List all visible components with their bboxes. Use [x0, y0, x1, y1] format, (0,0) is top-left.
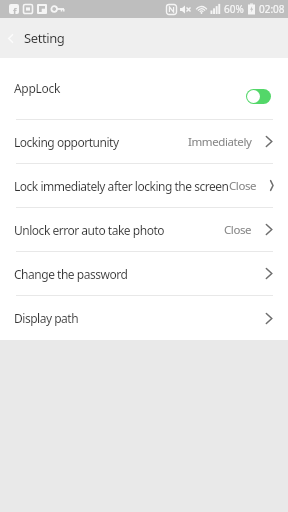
staticText: Display path: [14, 310, 79, 326]
staticText: Close: [224, 222, 252, 238]
staticText: Unlock error auto take photo: [14, 222, 165, 238]
staticText: 02:08: [259, 2, 285, 16]
staticText: Locking opportunity: [14, 134, 119, 150]
button[interactable]: AppLock: [0, 58, 288, 119]
button[interactable]: Unlock error auto take photo: [0, 208, 288, 251]
button[interactable]: Locking opportunity: [0, 120, 288, 163]
staticText: f: [13, 5, 17, 14]
staticText: Change the password: [14, 266, 128, 282]
staticText: Immediately: [188, 134, 252, 150]
staticText: AppLock: [14, 80, 61, 96]
button[interactable]: Lock immediately after locking the scree…: [0, 164, 288, 207]
staticText: Lock immediately after locking the scree…: [14, 178, 229, 194]
staticText: Setting: [24, 29, 65, 47]
staticText: 60%: [224, 2, 244, 16]
button[interactable]: Display path: [0, 296, 288, 340]
staticText: Close: [229, 178, 257, 194]
button[interactable]: Change the password: [0, 252, 288, 295]
button[interactable]: [246, 89, 271, 104]
